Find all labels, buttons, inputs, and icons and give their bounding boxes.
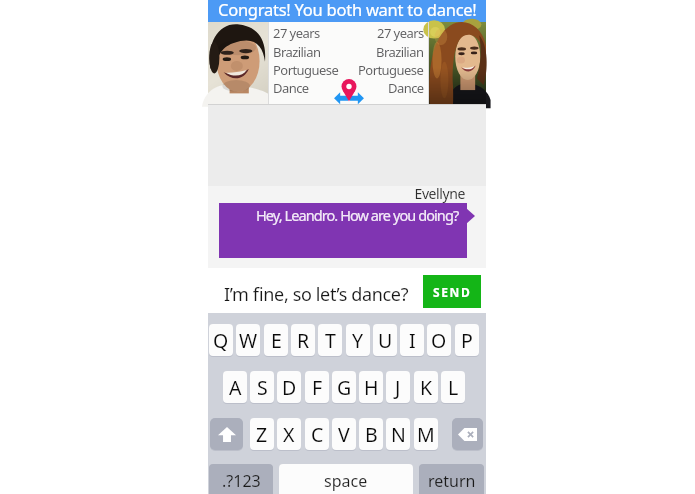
staticText: X xyxy=(283,421,295,448)
staticText: S xyxy=(257,374,268,401)
staticText: Portuguese xyxy=(273,61,339,79)
staticText: 27 years xyxy=(377,24,424,42)
staticText: 27 years xyxy=(273,24,320,42)
staticText: Evellyne xyxy=(208,184,465,203)
button[interactable]: F xyxy=(305,371,329,403)
staticText: N xyxy=(391,421,406,448)
staticText: Y xyxy=(352,327,364,354)
staticText: Dance xyxy=(273,79,309,97)
staticText: Congrats! You both want to dance! xyxy=(218,0,477,20)
staticText: Hey, Leandro. How are you doing? xyxy=(256,205,459,225)
button[interactable]: P xyxy=(455,324,479,356)
button[interactable]: Congrats! You both want to dance! xyxy=(208,0,486,22)
staticText: P xyxy=(461,327,473,354)
button[interactable]: Z xyxy=(250,418,274,450)
staticText: F xyxy=(312,374,323,401)
staticText: M xyxy=(417,421,435,448)
staticText: space xyxy=(324,470,368,492)
button[interactable]: Backspace xyxy=(452,418,483,450)
button[interactable]: return xyxy=(419,464,484,494)
staticText: B xyxy=(365,421,378,448)
button[interactable]: C xyxy=(305,418,329,450)
button[interactable]: N xyxy=(386,418,410,450)
button[interactable]: .?123 xyxy=(209,464,273,494)
staticText: Portuguese xyxy=(358,61,424,79)
button[interactable]: H xyxy=(359,371,383,403)
button[interactable]: S xyxy=(250,371,274,403)
button[interactable]: E xyxy=(264,324,288,356)
button[interactable]: K xyxy=(414,371,438,403)
staticText: E xyxy=(271,327,282,354)
staticText: D xyxy=(282,374,297,401)
staticText: R xyxy=(297,327,310,354)
button[interactable]: X xyxy=(277,418,301,450)
staticText: Dance xyxy=(388,79,424,97)
staticText: Z xyxy=(256,421,268,448)
button[interactable]: V xyxy=(332,418,356,450)
staticText: J xyxy=(395,374,401,401)
button[interactable]: D xyxy=(277,371,301,403)
staticText: Brazilian xyxy=(273,43,321,61)
staticText: G xyxy=(337,374,352,401)
staticText: W xyxy=(239,327,258,354)
button[interactable]: Y xyxy=(346,324,370,356)
staticText: K xyxy=(420,374,433,401)
button[interactable]: B xyxy=(359,418,383,450)
button[interactable]: W xyxy=(236,324,260,356)
staticText: SEND xyxy=(433,284,472,300)
button[interactable]: SEND xyxy=(423,275,481,308)
staticText: U xyxy=(378,327,393,354)
button[interactable]: U xyxy=(373,324,397,356)
staticText: H xyxy=(364,374,379,401)
staticText: Q xyxy=(213,327,229,354)
button[interactable]: L xyxy=(441,371,465,403)
staticText: .?123 xyxy=(222,470,261,492)
staticText: T xyxy=(325,327,336,354)
button[interactable]: A xyxy=(223,371,247,403)
button[interactable]: I xyxy=(400,324,424,356)
staticText: I’m fine, so let’s dance? xyxy=(224,282,409,307)
button[interactable]: O xyxy=(427,324,451,356)
staticText: L xyxy=(448,374,459,401)
staticText: I xyxy=(409,327,416,354)
staticText: Brazilian xyxy=(376,43,424,61)
button[interactable] xyxy=(208,268,486,313)
button[interactable]: J xyxy=(386,371,410,403)
button[interactable]: Hey, Leandro. How are you doing? xyxy=(219,203,473,258)
button[interactable]: M xyxy=(414,418,438,450)
staticText: V xyxy=(338,421,350,448)
button[interactable]: Q xyxy=(209,324,233,356)
button[interactable]: G xyxy=(332,371,356,403)
staticText: C xyxy=(311,421,324,448)
staticText: A xyxy=(229,374,242,401)
staticText: return xyxy=(428,470,476,492)
button[interactable]: R xyxy=(291,324,315,356)
button[interactable]: T xyxy=(318,324,342,356)
staticText: O xyxy=(431,327,447,354)
button[interactable]: space xyxy=(279,464,413,494)
button[interactable]: Shift xyxy=(210,418,243,450)
